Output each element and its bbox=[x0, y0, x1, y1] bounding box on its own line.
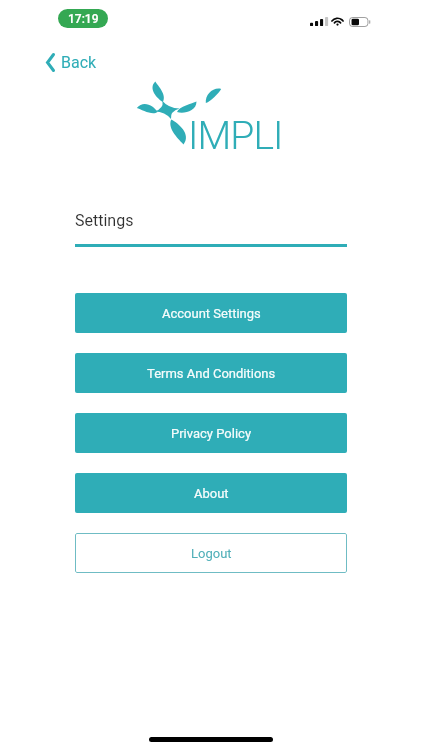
staticText: Settings bbox=[75, 211, 134, 230]
staticText: Privacy Policy bbox=[171, 426, 252, 441]
staticText: Back bbox=[61, 53, 97, 72]
staticText: Account Settings bbox=[162, 306, 261, 321]
staticText: Logout bbox=[191, 546, 232, 561]
button[interactable]: Terms And Conditions bbox=[75, 353, 347, 393]
button[interactable]: Back bbox=[46, 48, 97, 76]
button[interactable]: Logout bbox=[75, 533, 347, 573]
button[interactable]: About bbox=[75, 473, 347, 513]
other: IMPLI logo bbox=[136, 80, 192, 150]
staticText: 17:19 bbox=[68, 12, 99, 26]
staticText: Terms And Conditions bbox=[147, 366, 276, 381]
button[interactable]: Privacy Policy bbox=[75, 413, 347, 453]
button[interactable]: Account Settings bbox=[75, 293, 347, 333]
staticText: IMPLI bbox=[188, 113, 283, 159]
staticText: About bbox=[194, 486, 229, 501]
